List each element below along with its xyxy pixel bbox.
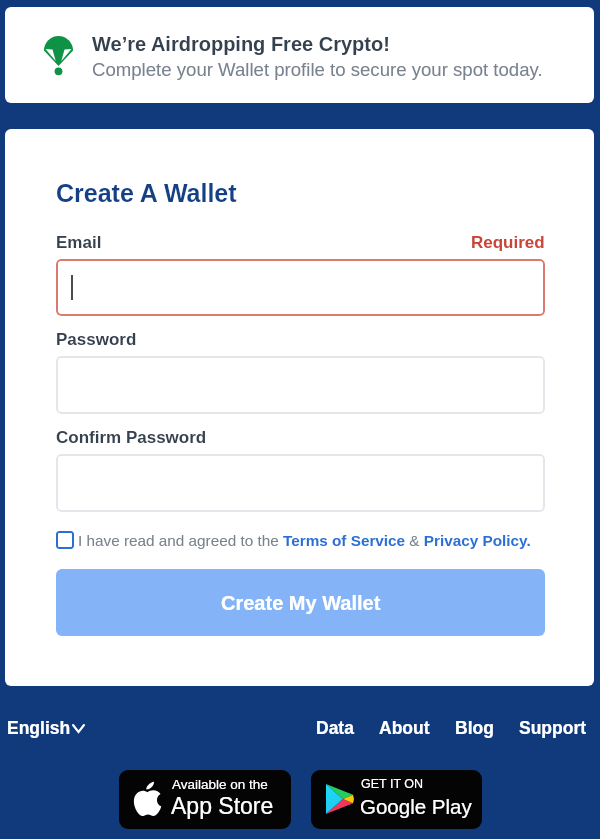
staticText: We’re Airdropping Free Crypto! bbox=[92, 33, 390, 55]
staticText: Blog bbox=[455, 718, 494, 738]
staticText: GET IT ON bbox=[361, 777, 424, 791]
staticText: Available on the bbox=[172, 777, 268, 792]
button[interactable]: Text input field bbox=[56, 454, 545, 512]
button[interactable]: Blog bbox=[455, 718, 494, 738]
staticText: Data bbox=[316, 718, 354, 738]
button[interactable]: Support bbox=[519, 718, 587, 738]
button[interactable]: English bbox=[7, 718, 84, 738]
staticText: I have read and agreed to the Terms of S… bbox=[78, 532, 531, 549]
staticText: Email bbox=[56, 233, 102, 252]
staticText: Support bbox=[519, 718, 587, 738]
staticText: App Store bbox=[171, 793, 274, 819]
button[interactable]: About bbox=[379, 718, 430, 738]
staticText: Password bbox=[56, 330, 137, 349]
staticText: English bbox=[7, 718, 71, 738]
staticText: Create My Wallet bbox=[221, 592, 381, 614]
staticText: About bbox=[379, 718, 430, 738]
staticText: Google Play bbox=[360, 795, 472, 818]
staticText: Create A Wallet bbox=[56, 179, 237, 207]
button[interactable]: Agree to terms bbox=[56, 531, 74, 549]
button[interactable]: Get it on Google Play bbox=[311, 770, 482, 829]
button[interactable]: Text input field bbox=[56, 356, 545, 414]
staticText: Required bbox=[471, 233, 545, 252]
staticText: Complete your Wallet profile to secure y… bbox=[92, 59, 543, 80]
staticText: Confirm Password bbox=[56, 428, 207, 447]
button[interactable]: Available on the App Store bbox=[119, 770, 291, 829]
button[interactable]: Text input field bbox=[56, 259, 545, 316]
button[interactable]: Create My Wallet bbox=[56, 569, 545, 636]
button[interactable]: Data bbox=[316, 718, 354, 738]
